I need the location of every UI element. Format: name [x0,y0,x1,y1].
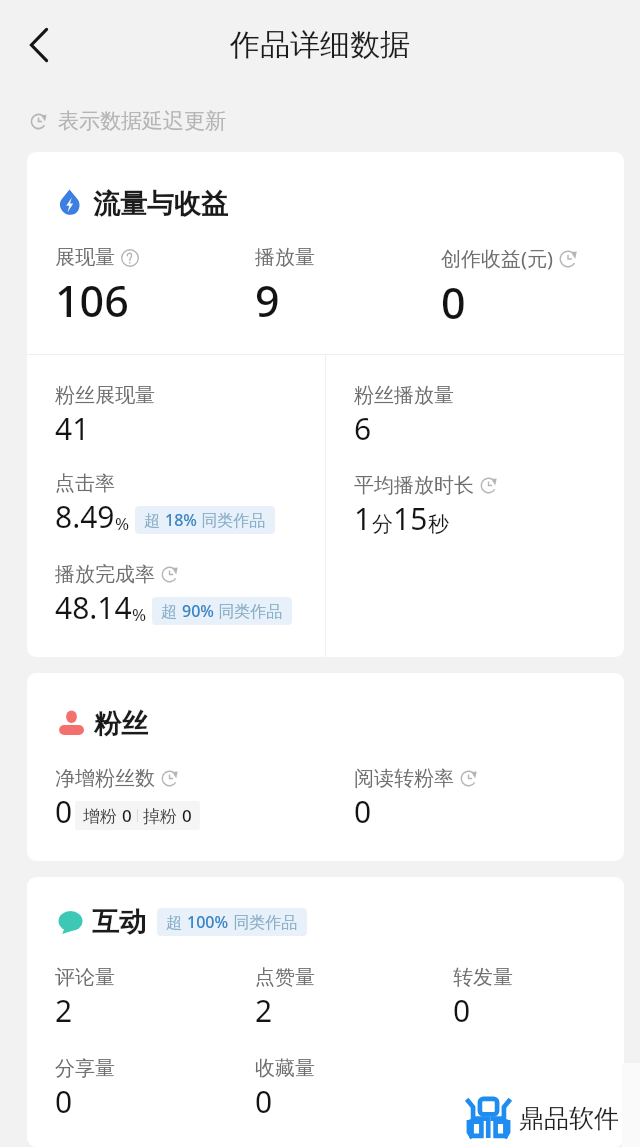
staticText: 6 [354,408,372,449]
staticText: 点击率 [55,471,115,496]
staticText: 展现量 [55,245,115,270]
staticText: 2 [255,990,273,1031]
button[interactable]: Back [15,21,63,69]
staticText: 收藏量 [255,1056,315,1081]
staticText: 秒 [428,511,449,537]
staticText: 分 [372,511,393,537]
staticText: 超 [144,509,165,531]
staticText: 超 [166,911,187,933]
staticText: 平均播放时长 [354,473,474,498]
staticText: 评论量 [55,965,115,990]
staticText: 作品详细数据 [230,26,410,64]
staticText: 流量与收益 [93,187,228,221]
staticText: 0 [55,1081,73,1122]
staticText: 粉丝 [94,707,148,741]
staticText: 转发量 [453,965,513,990]
staticText: 鼎品软件 [519,1103,619,1134]
staticText: 0 [453,990,471,1031]
staticText: 分享量 [55,1056,115,1081]
staticText: 点赞量 [255,965,315,990]
staticText: 41 [55,408,90,449]
staticText: 增粉 [83,804,122,827]
staticText: 2 [55,990,73,1031]
staticText: 1 [354,498,372,539]
staticText: 同类作品 [197,509,266,531]
staticText: 播放量 [255,245,315,270]
staticText: 0 [55,791,73,832]
staticText: 掉粉 [143,804,182,827]
staticText: 粉丝展现量 [55,383,155,408]
staticText: 8.49 [55,496,115,537]
staticText: 0 [354,791,372,832]
staticText: 超 [161,600,182,622]
staticText: 净增粉丝数 [55,766,155,791]
staticText: 表示数据延迟更新 [58,108,226,134]
staticText: 18% [165,509,197,531]
staticText: % [115,512,130,535]
staticText: 90% [182,600,214,622]
staticText: 互动 [92,905,146,939]
staticText: 100% [187,911,229,933]
staticText: 创作收益(元) [441,245,553,272]
staticText: 15 [393,498,428,539]
staticText: 阅读转粉率 [354,766,454,791]
staticText: 48.14 [55,587,132,628]
staticText: 9 [255,271,280,330]
staticText: 播放完成率 [55,562,155,587]
staticText: 0 [441,273,466,332]
staticText: 0 [122,804,132,827]
staticText: 0 [182,804,192,827]
staticText: 106 [55,271,129,330]
staticText: 粉丝播放量 [354,383,454,408]
staticText: % [132,603,147,626]
staticText: 同类作品 [214,600,283,622]
staticText: 同类作品 [229,911,298,933]
staticText: 0 [255,1081,273,1122]
